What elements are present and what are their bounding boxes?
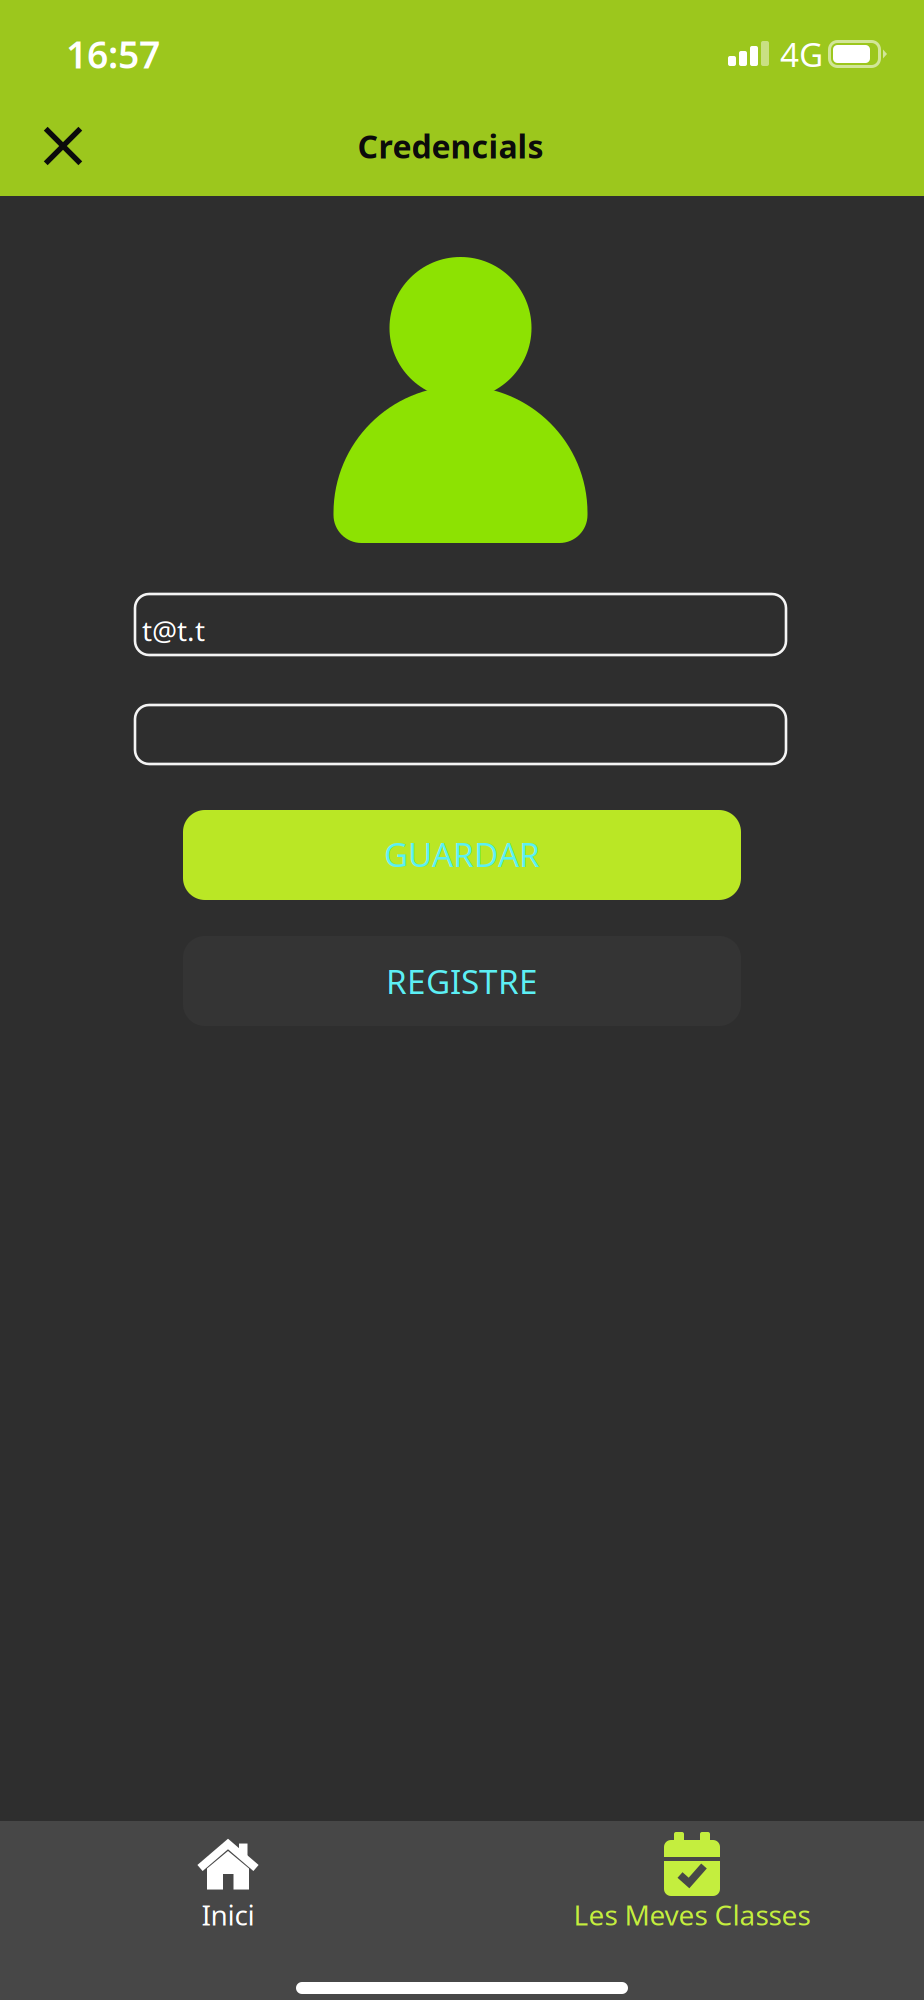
button[interactable]: Inici [114, 1821, 342, 1951]
staticText: t@t.t [142, 612, 205, 649]
button[interactable]: REGISTRE [183, 936, 741, 1026]
button[interactable]: Close [0, 108, 110, 196]
staticText: REGISTRE [386, 959, 538, 1003]
staticText: Inici [201, 1896, 254, 1933]
staticText: Credencials [357, 125, 543, 167]
button[interactable]: GUARDAR [183, 810, 741, 900]
staticText: GUARDAR [384, 832, 540, 876]
button[interactable]: Correu electrònic [135, 594, 786, 655]
staticText: 16:57 [66, 29, 160, 79]
button[interactable]: Contrasenya [135, 705, 786, 764]
button[interactable]: Les Meves Classes [542, 1821, 842, 1951]
staticText: Les Meves Classes [573, 1896, 810, 1933]
staticText: 4G [780, 32, 823, 76]
